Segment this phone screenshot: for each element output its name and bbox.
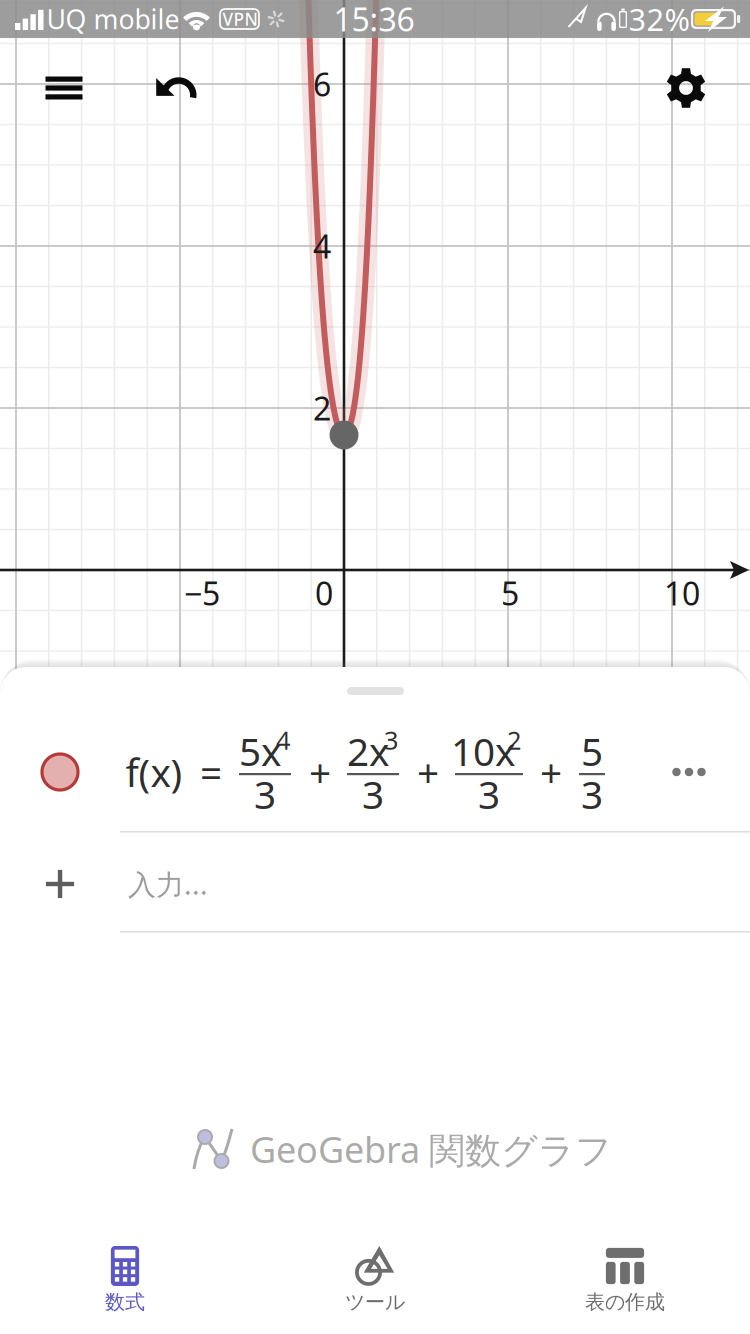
staticText: 2 <box>313 387 331 429</box>
staticText: 32% <box>628 0 689 39</box>
button[interactable]: 表の作成 <box>500 1220 750 1334</box>
staticText: ツール <box>345 1290 405 1314</box>
staticText: 数式 <box>105 1290 145 1314</box>
staticText: 3 <box>362 768 384 820</box>
staticText: + <box>540 746 562 798</box>
staticText: 3 <box>384 723 398 757</box>
button[interactable]: 入力... <box>0 833 750 933</box>
staticText: 2x <box>347 725 389 777</box>
staticText: 5 <box>581 725 603 777</box>
staticText: = <box>200 746 222 798</box>
staticText: −5 <box>184 572 220 614</box>
staticText: 3 <box>478 768 500 820</box>
staticText: f(x) <box>125 746 182 798</box>
staticText: 5 <box>501 572 519 614</box>
button[interactable]: 数式 <box>0 1220 250 1334</box>
staticText: 4 <box>276 723 290 757</box>
staticText: 0 <box>315 572 333 614</box>
staticText: 10x <box>451 725 515 777</box>
staticText: 入力... <box>128 865 208 903</box>
staticText: 4 <box>313 225 331 267</box>
staticText: + <box>417 746 439 798</box>
button[interactable]: ツール <box>250 1220 500 1334</box>
staticText: GeoGebra 関数グラフ <box>250 1125 612 1173</box>
staticText: 6 <box>313 63 331 105</box>
staticText: VPN <box>222 7 257 30</box>
button[interactable]: Menu <box>21 45 107 131</box>
staticText: 3 <box>254 768 276 820</box>
staticText: 10 <box>664 572 700 614</box>
staticText: 5x <box>239 725 281 777</box>
staticText: 表の作成 <box>585 1290 665 1314</box>
staticText: 2 <box>507 723 521 757</box>
staticText: 15:36 <box>333 0 414 40</box>
button[interactable]: Settings <box>643 45 729 131</box>
button[interactable]: Undo <box>134 45 220 131</box>
button[interactable]: More options <box>649 735 729 809</box>
staticText: + <box>309 746 331 798</box>
staticText: UQ mobile <box>46 1 179 37</box>
button[interactable]: Toggle function visibility <box>17 729 103 815</box>
staticText: 3 <box>581 768 603 820</box>
